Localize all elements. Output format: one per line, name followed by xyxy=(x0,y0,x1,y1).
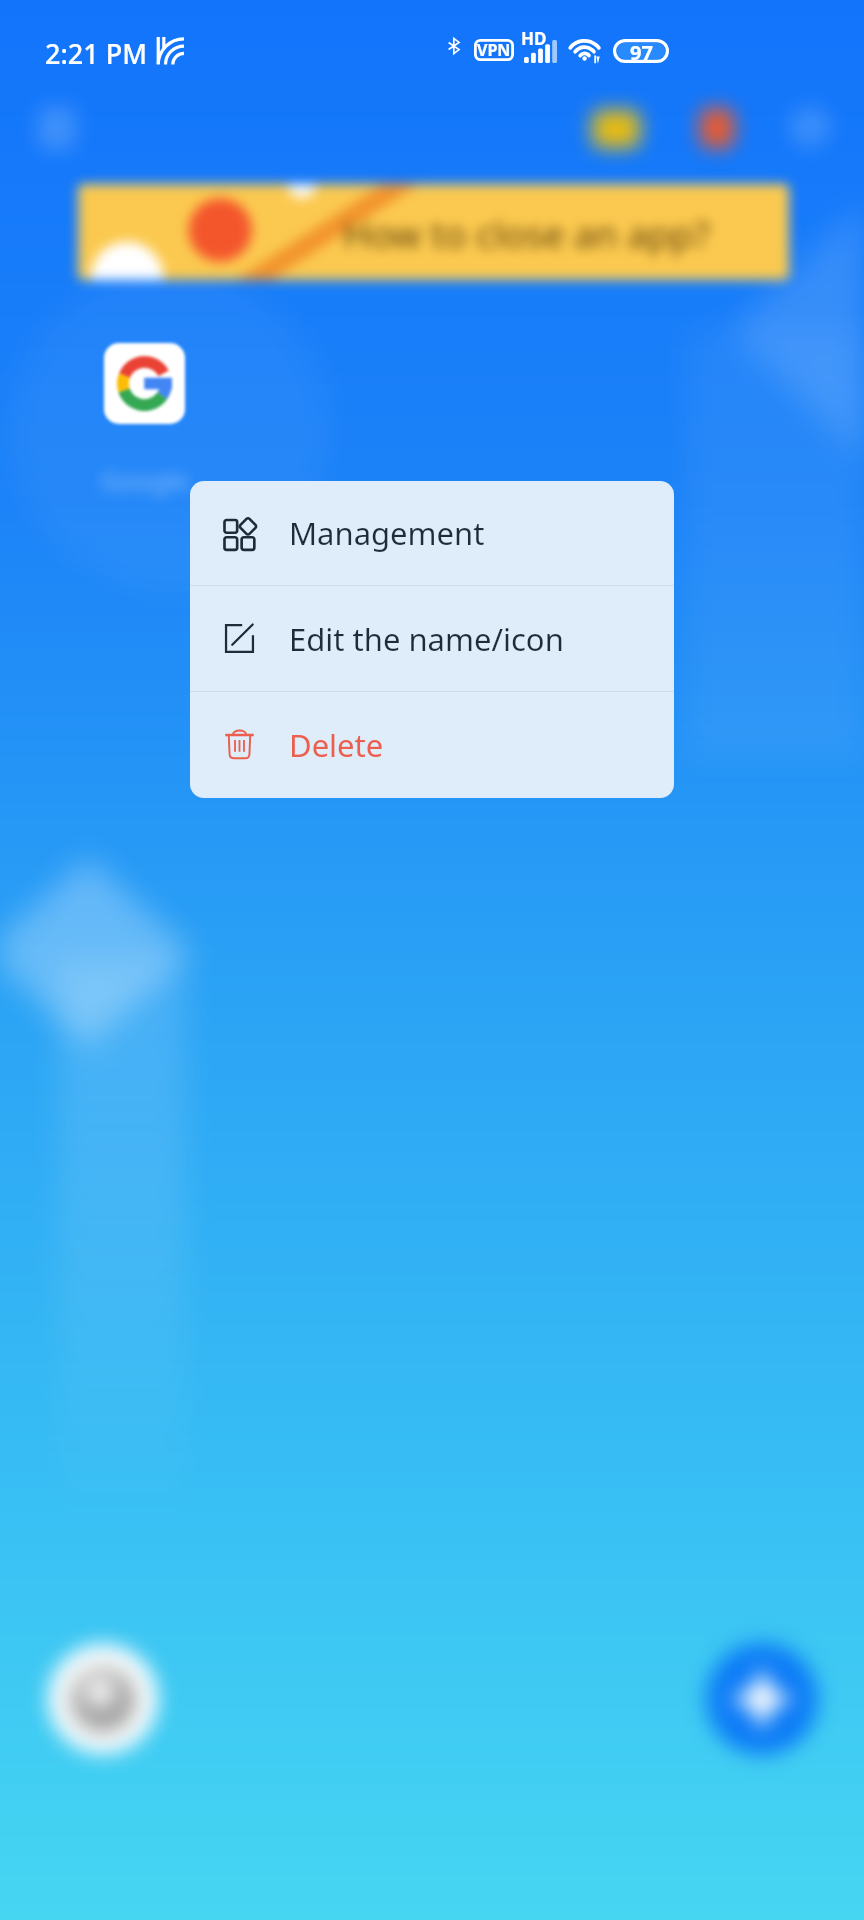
staticText: 2:21 PM xyxy=(45,35,147,72)
staticText: Delete xyxy=(289,724,384,766)
staticText: How to close an app? xyxy=(343,208,710,258)
button[interactable]: Assistant xyxy=(707,1643,819,1755)
button[interactable]: Google xyxy=(104,343,185,424)
button[interactable]: Management xyxy=(190,481,674,585)
staticText: Management xyxy=(289,512,485,554)
staticText: 97 xyxy=(630,39,653,63)
staticText: HD xyxy=(521,27,547,50)
button[interactable]: How to close an app banner xyxy=(78,184,789,280)
staticText: Edit the name/icon xyxy=(289,618,564,660)
staticText: VPN xyxy=(477,39,511,61)
button[interactable]: Delete xyxy=(190,692,674,797)
button[interactable]: Edit the name/icon xyxy=(190,586,674,691)
staticText: Google xyxy=(101,462,189,497)
button[interactable]: Messages xyxy=(48,1644,158,1754)
